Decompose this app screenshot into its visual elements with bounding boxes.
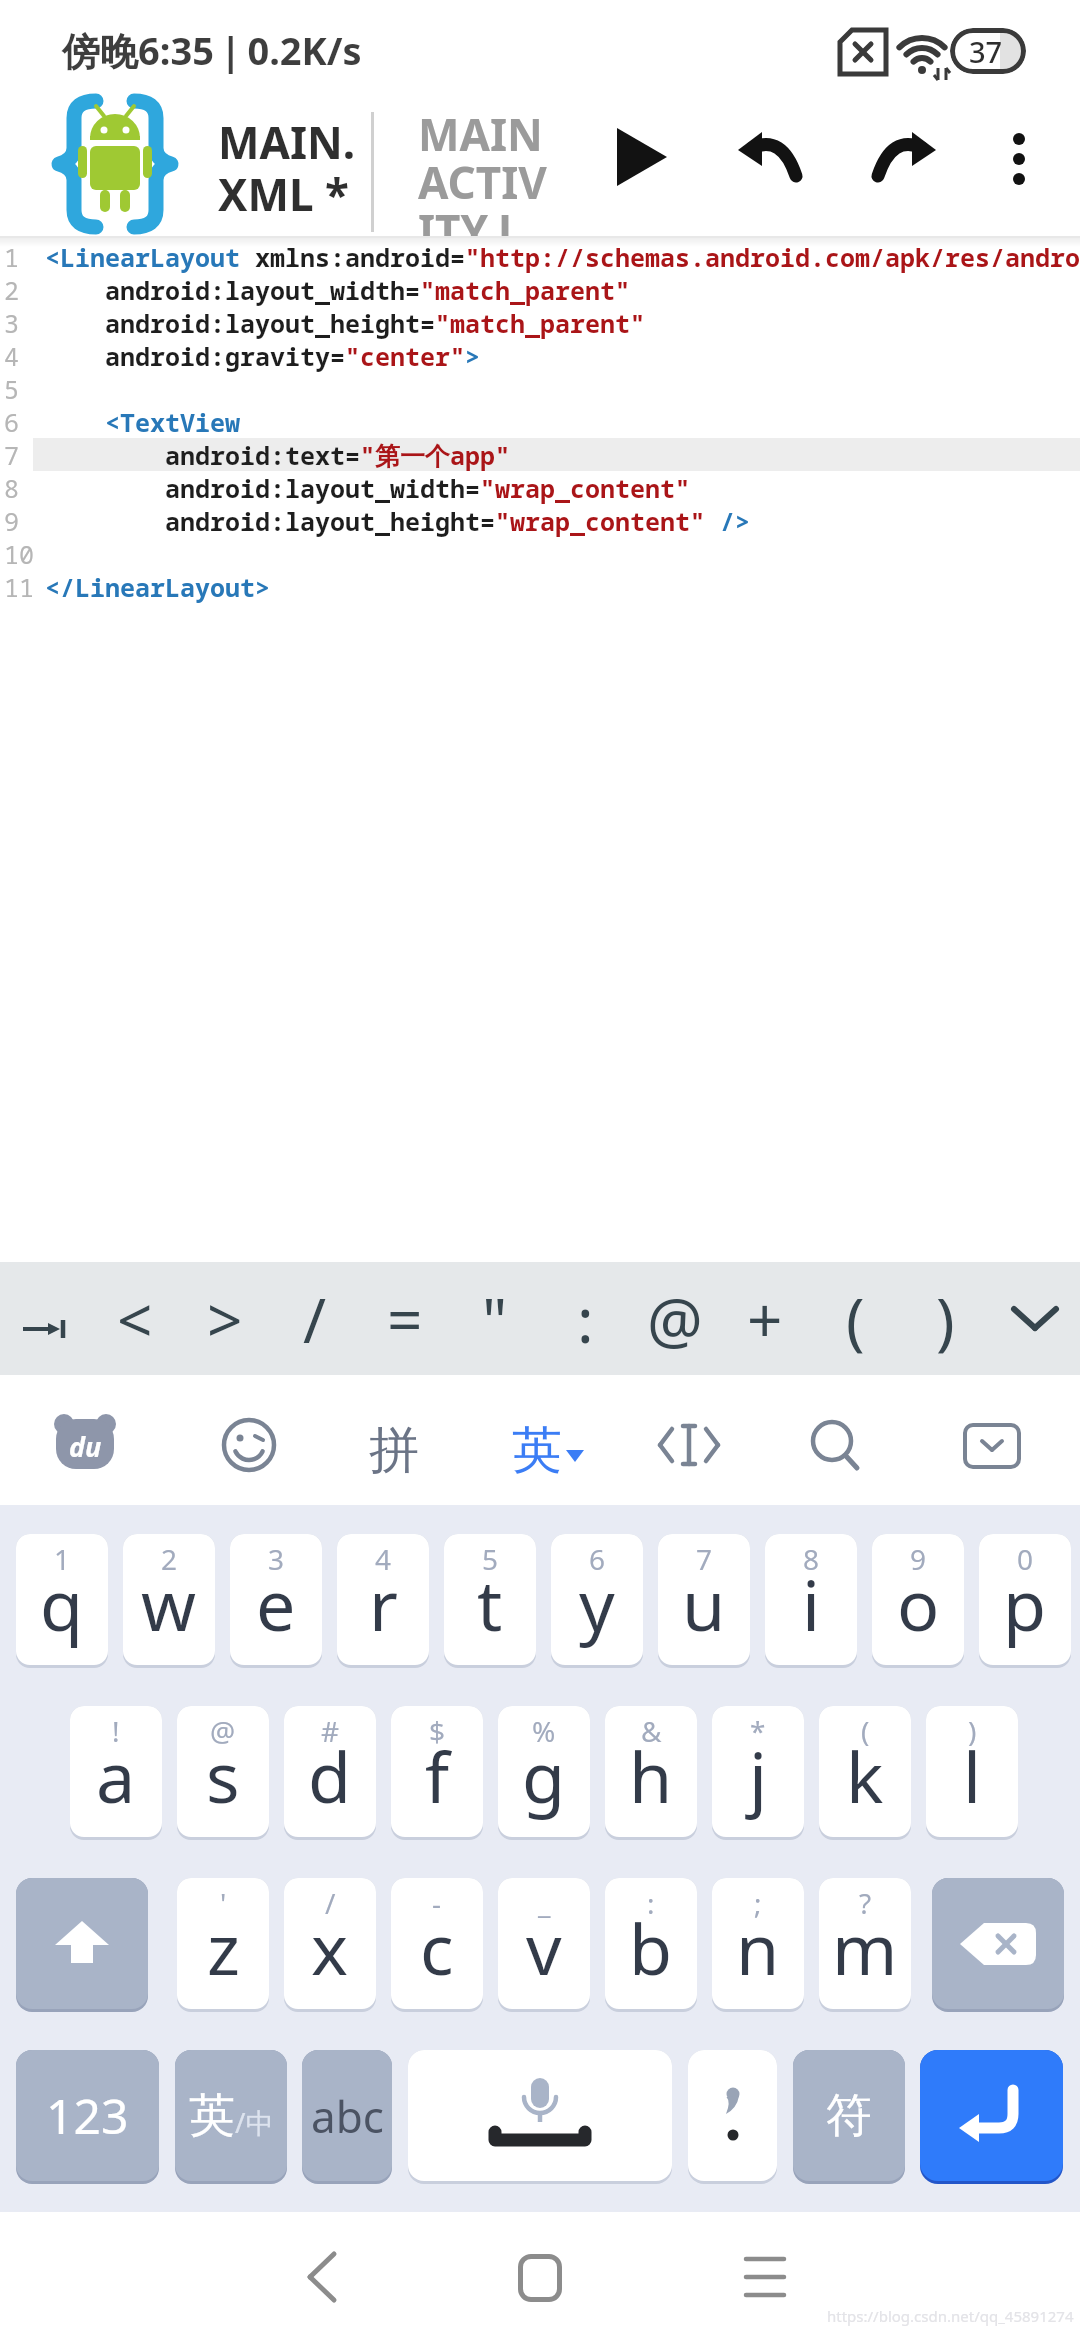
button[interactable]: % (498, 1706, 590, 1837)
button[interactable] (617, 128, 667, 186)
staticText: v (526, 1900, 562, 1995)
button[interactable]: > (180, 1262, 270, 1375)
staticText: 6 (589, 1540, 606, 1578)
staticText: / (325, 1884, 336, 1922)
staticText: l (963, 1728, 982, 1823)
staticText: z (207, 1900, 240, 1995)
button[interactable] (1006, 132, 1032, 186)
button[interactable]: ) (900, 1262, 990, 1375)
staticText: j (749, 1728, 768, 1823)
button[interactable] (808, 1419, 864, 1473)
button[interactable] (518, 2254, 562, 2302)
staticText: - (432, 1884, 442, 1922)
staticText: : (647, 1884, 655, 1922)
button[interactable]: ( (819, 1706, 911, 1837)
button[interactable]: - (391, 1878, 483, 2009)
button[interactable]: ' (177, 1878, 269, 2009)
staticText: 7 (696, 1540, 713, 1578)
staticText: b (629, 1900, 673, 1995)
button[interactable]: 英 (175, 2050, 287, 2181)
button[interactable] (658, 1421, 720, 1469)
button[interactable]: abc (302, 2050, 392, 2181)
button[interactable]: # (284, 1706, 376, 1837)
button[interactable]: + (720, 1262, 810, 1375)
staticText: y (579, 1556, 615, 1651)
button[interactable]: MAIN ACTIV ITY.J (418, 104, 598, 236)
button[interactable] (408, 2050, 672, 2181)
button[interactable]: _ (498, 1878, 590, 2009)
button[interactable]: 英 (512, 1419, 584, 1482)
staticText: n (736, 1900, 780, 1995)
staticText: # (321, 1712, 340, 1750)
staticText: 0 (1017, 1540, 1034, 1578)
staticText: 123 (46, 2083, 129, 2148)
button[interactable] (0, 1262, 90, 1375)
button[interactable] (306, 2252, 338, 2302)
button[interactable]: < (90, 1262, 180, 1375)
button[interactable]: 1 (16, 1534, 108, 1665)
button[interactable]: : (605, 1878, 697, 2009)
button[interactable]: 0 (979, 1534, 1071, 1665)
staticText: 4 (4, 339, 20, 372)
button[interactable]: $ (391, 1706, 483, 1837)
staticText: m (832, 1900, 898, 1995)
staticText: _ (538, 1884, 551, 1922)
staticText: ( (846, 1277, 865, 1361)
staticText: * (750, 1712, 766, 1750)
button[interactable]: " (450, 1262, 540, 1375)
button[interactable] (932, 1878, 1064, 2009)
button[interactable]: / (270, 1262, 360, 1375)
staticText: x (311, 1900, 349, 1995)
button[interactable]: 5 (444, 1534, 536, 1665)
button[interactable] (744, 2256, 786, 2298)
button[interactable] (872, 132, 936, 184)
staticText: 2 (4, 273, 20, 306)
button[interactable]: 符 (793, 2050, 905, 2181)
button[interactable]: / (284, 1878, 376, 2009)
staticText: " (482, 1277, 508, 1361)
button[interactable]: * (712, 1706, 804, 1837)
staticText: : (577, 1277, 594, 1361)
button[interactable] (963, 1423, 1021, 1469)
button[interactable]: du (53, 1413, 117, 1475)
staticText: @ (210, 1712, 236, 1750)
button[interactable] (990, 1262, 1080, 1375)
button[interactable]: : (540, 1262, 630, 1375)
button[interactable]: & (605, 1706, 697, 1837)
button[interactable] (52, 96, 178, 232)
button[interactable]: ? (819, 1878, 911, 2009)
button[interactable] (688, 2050, 777, 2181)
button[interactable]: 3 (230, 1534, 322, 1665)
button[interactable]: 4 (337, 1534, 429, 1665)
button[interactable]: 2 (123, 1534, 215, 1665)
staticText: 8 (4, 471, 20, 504)
button[interactable] (16, 1878, 148, 2009)
staticText: & (641, 1712, 662, 1750)
staticText: p (1003, 1556, 1047, 1651)
staticText: 1 (4, 240, 20, 273)
button[interactable]: ( (810, 1262, 900, 1375)
button[interactable]: 123 (16, 2050, 159, 2181)
button[interactable]: @ (630, 1262, 720, 1375)
button[interactable]: 8 (765, 1534, 857, 1665)
button[interactable] (920, 2050, 1063, 2181)
button[interactable]: ! (70, 1706, 162, 1837)
button[interactable]: 9 (872, 1534, 964, 1665)
button[interactable]: @ (177, 1706, 269, 1837)
staticText: 37 (969, 32, 1003, 71)
staticText: 8 (803, 1540, 820, 1578)
staticText: 4 (375, 1540, 392, 1578)
staticText: <LinearLayout xmlns:android="http://sche… (45, 240, 1080, 273)
button[interactable]: 6 (551, 1534, 643, 1665)
staticText: MAIN. XML * (218, 112, 356, 224)
button[interactable]: 7 (658, 1534, 750, 1665)
staticText: android:layout_height="match_parent" (45, 306, 646, 339)
staticText: o (897, 1556, 940, 1651)
button[interactable]: ) (926, 1706, 1018, 1837)
button[interactable]: MAIN. XML * (218, 112, 356, 224)
button[interactable]: ; (712, 1878, 804, 2009)
button[interactable] (738, 132, 802, 184)
button[interactable] (221, 1417, 277, 1473)
button[interactable]: 拼 (369, 1419, 419, 1482)
button[interactable]: = (360, 1262, 450, 1375)
